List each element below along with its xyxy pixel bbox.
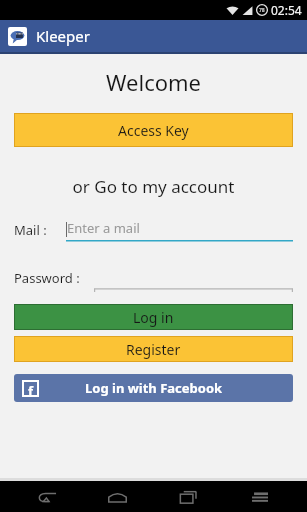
staticText: Welcome — [14, 67, 293, 97]
staticText: Enter a mail — [67, 219, 140, 237]
button[interactable]: Menu — [224, 481, 295, 512]
staticText: Kleeper — [36, 26, 90, 46]
button[interactable]: Home — [82, 481, 153, 512]
staticText: 78 — [259, 7, 265, 14]
staticText: Password : — [14, 269, 80, 287]
staticText: Mail : — [14, 221, 47, 239]
button[interactable]: Access Key — [14, 113, 293, 147]
button[interactable]: Recent apps — [153, 481, 224, 512]
staticText: Log in with Facebook — [85, 379, 223, 397]
staticText: Register — [126, 340, 181, 359]
button[interactable]: f — [14, 374, 293, 402]
button[interactable]: Back — [12, 481, 82, 512]
button[interactable]: Mail : — [14, 214, 293, 244]
button[interactable]: Log in — [14, 304, 293, 330]
staticText: Access Key — [118, 121, 189, 140]
button[interactable]: Password : — [14, 262, 293, 292]
button[interactable]: Register — [14, 336, 293, 362]
staticText: 02:54 — [271, 2, 302, 18]
staticText: or Go to my account — [14, 175, 293, 198]
staticText: f — [28, 382, 34, 395]
staticText: Log in — [133, 308, 174, 327]
